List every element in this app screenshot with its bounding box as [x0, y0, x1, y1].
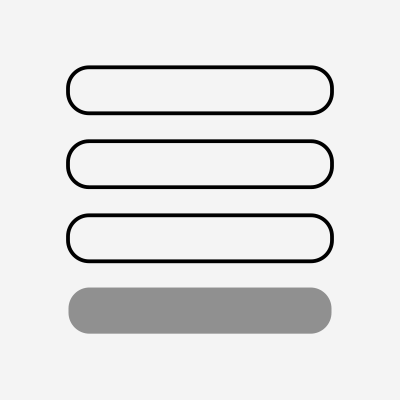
button[interactable]: Third option — [68, 215, 332, 261]
button[interactable]: Second option — [68, 141, 332, 187]
button[interactable]: Selected option — [68, 287, 331, 334]
button[interactable]: First option — [68, 67, 332, 113]
